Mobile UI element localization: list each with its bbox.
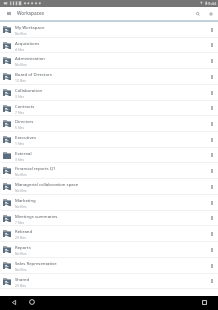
staticText: Reports <box>15 244 31 250</box>
staticText: Marketing <box>15 197 36 203</box>
button[interactable]: More options <box>206 101 218 115</box>
staticText: Rebrand <box>15 228 33 234</box>
button[interactable]: Reports <box>0 242 218 258</box>
button[interactable]: Financial reports Q1 <box>0 163 218 179</box>
button[interactable]: Open navigation menu <box>0 7 17 20</box>
staticText: 7 files <box>15 220 25 224</box>
staticText: 12 files <box>15 78 26 82</box>
button[interactable]: More options <box>206 116 218 131</box>
staticText: No files <box>15 251 27 255</box>
staticText: Administration <box>15 55 45 61</box>
staticText: No files <box>15 172 27 176</box>
button[interactable]: Create new <box>204 7 217 20</box>
button[interactable]: Rebrand <box>0 226 218 242</box>
staticText: Managerial collaboration space <box>15 181 79 187</box>
button[interactable]: Collaboration <box>0 85 218 101</box>
staticText: 3 files <box>15 94 25 98</box>
staticText: Contracts <box>15 103 35 109</box>
staticText: 29 files <box>15 235 26 239</box>
button[interactable]: Search <box>191 7 204 20</box>
staticText: Acquisitions <box>15 40 40 46</box>
button[interactable]: Recent apps <box>198 296 211 308</box>
button[interactable]: Directors <box>0 116 218 132</box>
staticText: 1 files <box>15 141 25 145</box>
staticText: No files <box>15 204 27 208</box>
button[interactable]: Board of Directors <box>0 69 218 85</box>
button[interactable]: More options <box>206 53 218 68</box>
button[interactable]: Acquisitions <box>0 38 218 53</box>
staticText: Directors <box>15 118 34 124</box>
staticText: 5 files <box>15 125 25 129</box>
staticText: 3 files <box>15 157 25 161</box>
staticText: 4 files <box>15 47 25 51</box>
staticText: External <box>15 150 32 156</box>
button[interactable]: More options <box>206 211 218 225</box>
staticText: My Workspace <box>15 24 45 30</box>
staticText: Financial reports Q1 <box>15 165 56 171</box>
button[interactable]: More options <box>206 132 218 147</box>
button[interactable]: External <box>0 148 218 163</box>
staticText: Shared <box>15 276 30 282</box>
button[interactable]: Shared <box>0 274 218 289</box>
button[interactable]: Contracts <box>0 101 218 116</box>
button[interactable]: Home <box>25 296 38 308</box>
button[interactable]: Back <box>7 296 20 308</box>
staticText: Collaboration <box>15 87 43 93</box>
button[interactable]: Marketing <box>0 195 218 211</box>
button[interactable]: More options <box>206 195 218 210</box>
button[interactable]: My Workspace <box>0 22 218 38</box>
staticText: No files <box>15 267 27 271</box>
button[interactable]: More options <box>206 69 218 84</box>
button[interactable]: More options <box>206 179 218 194</box>
staticText: Workspaces <box>17 10 45 17</box>
staticText: Meetings summaries <box>15 213 58 219</box>
button[interactable]: More options <box>206 85 218 100</box>
button[interactable]: More options <box>206 163 218 178</box>
button[interactable]: More options <box>206 226 218 241</box>
button[interactable]: Sales Representative <box>0 258 218 274</box>
staticText: 7 files <box>15 110 25 114</box>
button[interactable]: More options <box>206 242 218 257</box>
staticText: Board of Directors <box>15 71 52 77</box>
button[interactable]: Managerial collaboration space <box>0 179 218 195</box>
button[interactable]: Executives <box>0 132 218 148</box>
staticText: No files <box>15 31 27 35</box>
button[interactable]: More options <box>206 38 218 52</box>
button[interactable]: More options <box>206 22 218 37</box>
staticText: Executives <box>15 134 37 140</box>
staticText: No files <box>15 62 27 66</box>
staticText: 23 files <box>15 283 26 287</box>
button[interactable]: More options <box>206 148 218 162</box>
staticText: No files <box>15 188 27 192</box>
staticText: 9:44 <box>208 1 217 7</box>
button[interactable]: More options <box>206 258 218 273</box>
button[interactable]: Meetings summaries <box>0 211 218 226</box>
button[interactable]: More options <box>206 274 218 288</box>
staticText: Sales Representative <box>15 260 57 266</box>
button[interactable]: Administration <box>0 53 218 69</box>
